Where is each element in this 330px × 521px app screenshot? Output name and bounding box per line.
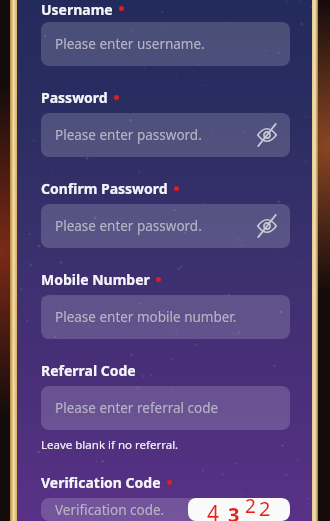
staticText: Leave blank if no referral. — [41, 437, 179, 453]
staticText: Please enter password. — [55, 217, 202, 235]
staticText: 2 — [259, 498, 271, 518]
staticText: Username — [41, 0, 113, 17]
button[interactable]: Refresh verification code — [188, 498, 290, 521]
staticText: Password — [41, 88, 108, 107]
staticText: 3 — [228, 501, 240, 521]
staticText: Verification code. — [55, 501, 165, 519]
button[interactable]: Please enter password. — [41, 204, 290, 248]
staticText: 4 — [207, 499, 220, 521]
button[interactable]: Please enter mobile number. — [41, 295, 290, 339]
staticText: Mobile Number — [41, 270, 150, 289]
button[interactable]: Show password — [256, 215, 278, 237]
staticText: Confirm Password — [41, 179, 168, 198]
button[interactable]: Please enter password. — [41, 113, 290, 157]
staticText: 2 — [245, 498, 256, 516]
staticText: Please enter referral code — [55, 399, 219, 417]
button[interactable]: Please enter referral code — [41, 386, 290, 430]
staticText: Please enter username. — [55, 35, 205, 53]
button[interactable]: Show password — [256, 124, 278, 146]
button[interactable]: Verification code. — [41, 498, 290, 521]
staticText: Verification Code — [41, 473, 161, 492]
staticText: Referral Code — [41, 361, 136, 380]
button[interactable]: Please enter username. — [41, 22, 290, 66]
staticText: Please enter password. — [55, 126, 202, 144]
staticText: Please enter mobile number. — [55, 308, 237, 326]
